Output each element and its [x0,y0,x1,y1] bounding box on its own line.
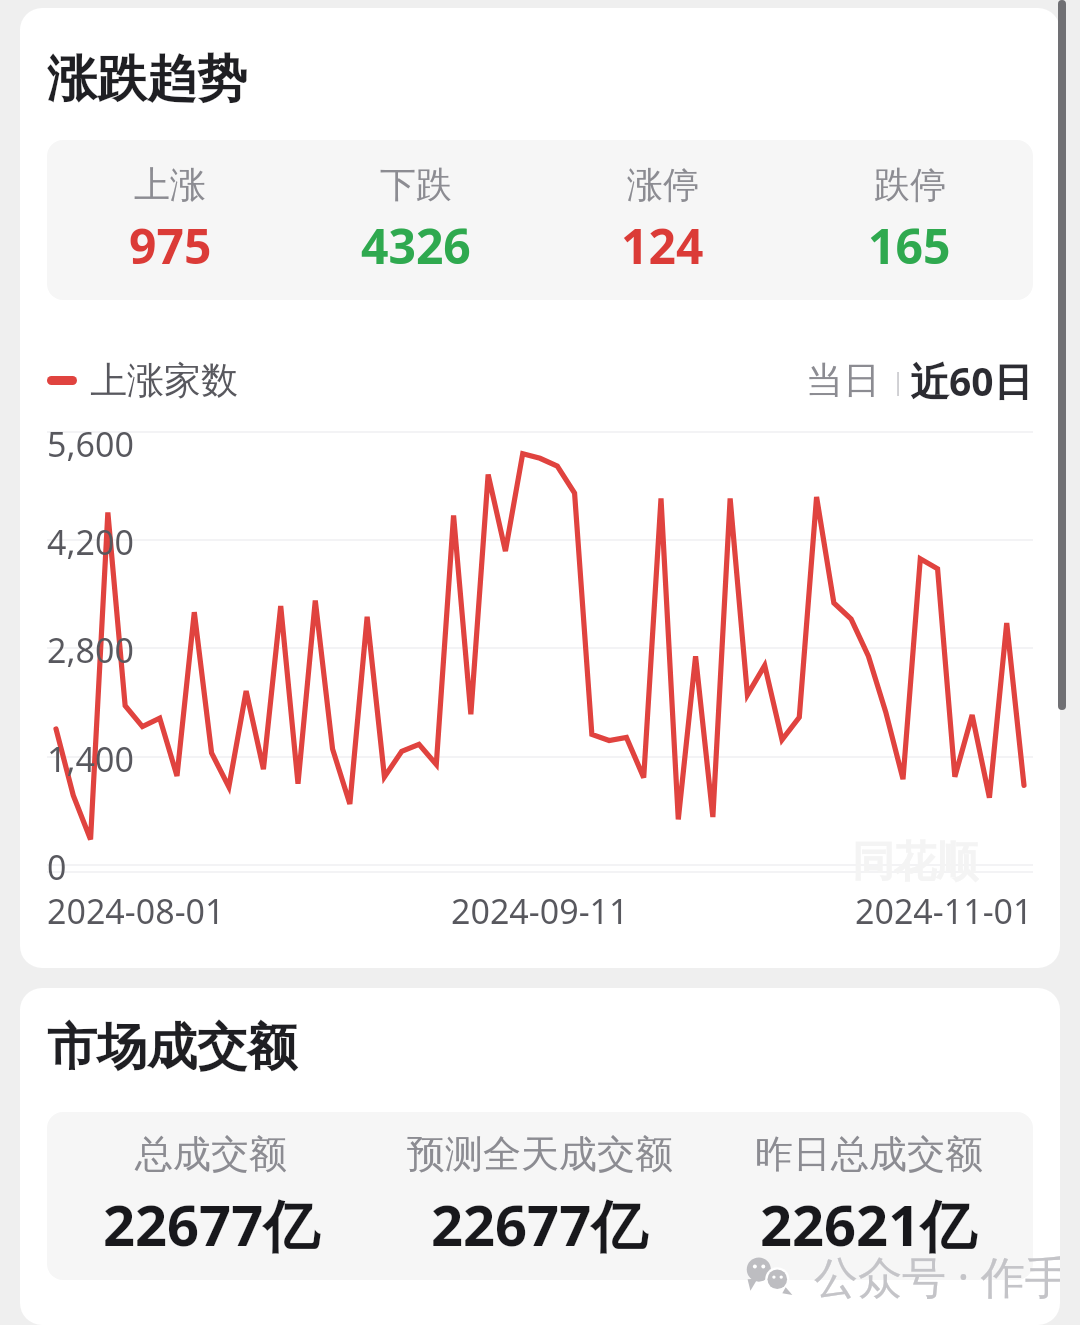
staticText: 2,800 [47,627,134,673]
staticText: 4,200 [47,519,134,565]
staticText: 22621亿 [760,1186,977,1262]
staticText: 4326 [361,213,471,278]
staticText: 公众号 · 作手小孟 [814,1246,1060,1302]
staticText: 总成交额 [135,1130,287,1178]
button[interactable]: 当日 [806,357,880,404]
staticText: 预测全天成交额 [407,1130,673,1178]
staticText: 124 [621,213,704,278]
staticText: 近60日 [910,354,1033,407]
staticText: 上涨家数 [90,357,238,404]
staticText: 165 [868,213,951,278]
staticText: 1,400 [47,736,134,782]
staticText: 市场成交额 [47,1016,297,1079]
staticText: 22677亿 [431,1186,648,1262]
button[interactable]: 近60日 [910,354,1033,407]
other: Scroll position [1058,0,1066,710]
staticText: 2024-09-11 [451,888,629,934]
staticText: 昨日总成交额 [755,1130,983,1178]
staticText: 同花顺 [852,836,978,889]
button[interactable]: 上涨家数 [47,357,238,404]
staticText: 跌停 [874,162,946,207]
staticText: 975 [129,213,212,278]
button[interactable]: 总成交额 [47,1112,1033,1280]
button[interactable]: 上涨 [47,140,1033,300]
staticText: ｜ [880,364,910,397]
staticText: 5,600 [47,421,134,467]
staticText: 上涨 [134,162,206,207]
staticText: 下跌 [380,162,452,207]
staticText: 涨跌趋势 [47,48,247,111]
staticText: 22677亿 [103,1186,320,1262]
staticText: 涨停 [627,162,699,207]
staticText: 2024-08-01 [47,888,225,934]
staticText: 0 [47,844,67,890]
staticText: 2024-11-01 [855,888,1033,934]
staticText: 当日 [806,357,880,404]
